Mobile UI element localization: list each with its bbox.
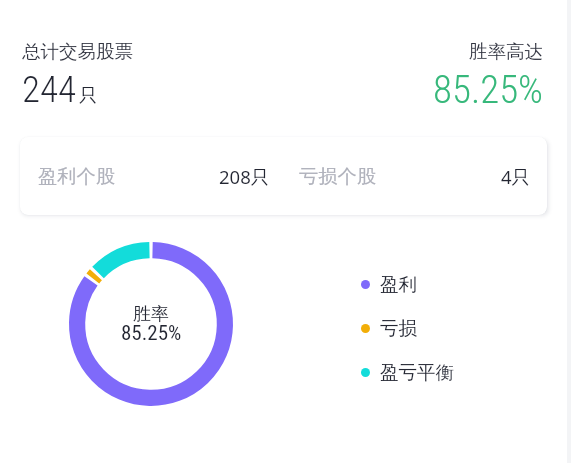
button[interactable]: 亏损 (361, 315, 417, 342)
staticText: 亏损个股 (299, 164, 377, 188)
staticText: 4只 (501, 164, 531, 189)
staticText: 盈亏平衡 (380, 361, 454, 384)
staticText: 胜率 (133, 303, 169, 326)
staticText: 只 (79, 84, 98, 107)
button[interactable]: 胜率 85.25% 圆环图 (69, 242, 233, 406)
button[interactable]: 亏损个股 (283, 137, 547, 215)
button[interactable]: 总计交易股票 (14, 32, 141, 112)
button[interactable]: 盈利 (361, 271, 417, 298)
staticText: 244 (22, 68, 76, 111)
button[interactable]: 盈亏平衡 (361, 359, 454, 386)
staticText: 总计交易股票 (22, 40, 133, 63)
staticText: 胜率高达 (469, 40, 543, 63)
staticText: 盈利 (380, 273, 417, 296)
staticText: 208只 (219, 164, 270, 189)
staticText: 盈利个股 (38, 164, 116, 188)
staticText: 85.25% (121, 321, 182, 346)
button[interactable]: 盈利个股 (20, 137, 283, 215)
button[interactable]: 胜率高达 (424, 32, 551, 115)
staticText: 亏损 (380, 317, 417, 340)
staticText: 85.25% (433, 67, 544, 113)
